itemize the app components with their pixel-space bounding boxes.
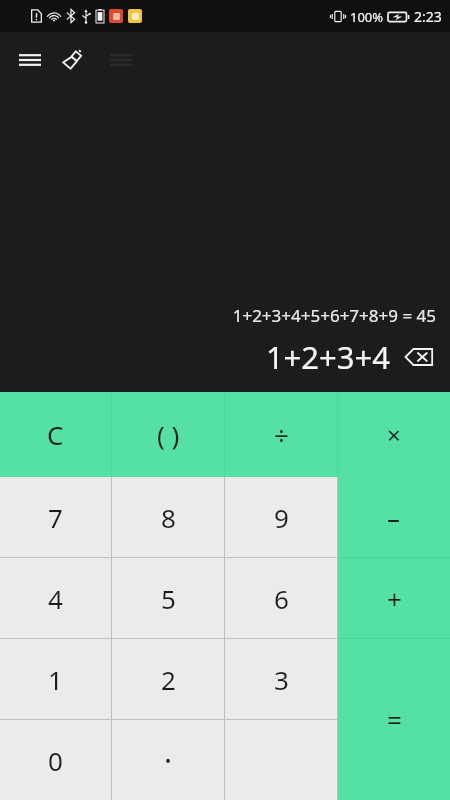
- button[interactable]: Menu: [6, 36, 54, 84]
- staticText: –: [387, 500, 401, 535]
- staticText: +: [387, 581, 402, 616]
- staticText: 6: [274, 581, 289, 616]
- staticText: 1: [48, 662, 63, 697]
- staticText: 2:23: [414, 7, 442, 26]
- staticText: 0: [48, 743, 63, 778]
- staticText: 8: [161, 500, 176, 535]
- button[interactable]: 4: [0, 558, 111, 638]
- staticText: ·: [164, 740, 173, 781]
- button[interactable]: ×: [338, 392, 450, 477]
- button[interactable]: History: [98, 37, 144, 83]
- button[interactable]: 9: [225, 477, 337, 557]
- button[interactable]: Theme: [49, 37, 95, 83]
- staticText: ×: [387, 418, 401, 451]
- button[interactable]: 0: [0, 720, 111, 800]
- button[interactable]: –: [338, 477, 450, 557]
- staticText: ( ): [157, 417, 180, 452]
- button[interactable]: 6: [225, 558, 337, 638]
- staticText: 4: [48, 581, 63, 616]
- staticText: 9: [274, 500, 289, 535]
- button[interactable]: +: [338, 558, 450, 638]
- button[interactable]: 5: [112, 558, 224, 638]
- button[interactable]: 1: [0, 639, 111, 719]
- staticText: 2: [161, 662, 176, 697]
- button[interactable]: 2: [112, 639, 224, 719]
- staticText: 5: [161, 581, 176, 616]
- button[interactable]: ÷: [225, 392, 337, 477]
- staticText: 3: [274, 662, 289, 697]
- button[interactable]: 8: [112, 477, 224, 557]
- button[interactable]: C: [0, 392, 111, 477]
- staticText: 1+2+3+4+5+6+7+8+9 = 45: [232, 304, 436, 327]
- staticText: C: [47, 417, 64, 452]
- staticText: 7: [48, 500, 63, 535]
- button[interactable]: ·: [112, 720, 224, 800]
- button[interactable]: ( ): [112, 392, 224, 477]
- button[interactable]: 7: [0, 477, 111, 557]
- staticText: 1+2+3+4: [265, 336, 390, 378]
- button[interactable]: 3: [225, 639, 337, 719]
- button[interactable]: =: [338, 639, 450, 800]
- button[interactable]: Backspace: [402, 343, 436, 371]
- staticText: =: [387, 702, 402, 737]
- staticText: ÷: [274, 417, 289, 452]
- staticText: 100%: [350, 8, 384, 26]
